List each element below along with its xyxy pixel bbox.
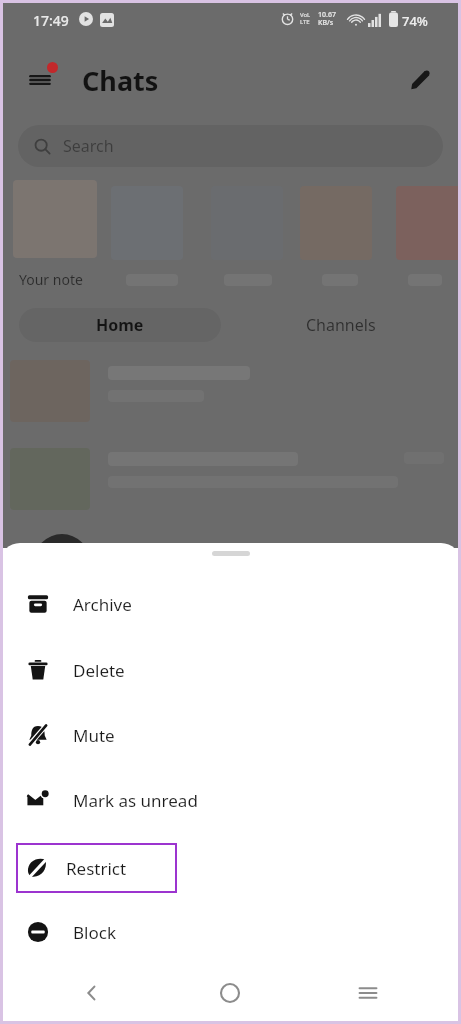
button[interactable]: Back — [72, 973, 112, 1013]
staticText: Search — [63, 135, 114, 157]
button[interactable]: Home — [19, 308, 221, 342]
staticText: Archive — [73, 593, 132, 616]
staticText: VoL LTE — [300, 11, 311, 26]
button[interactable]: Archive — [0, 578, 461, 630]
staticText: 10.67 KB/s — [318, 10, 336, 27]
staticText: Mark as unread — [73, 789, 198, 812]
button[interactable]: Block — [0, 906, 461, 958]
button[interactable]: Menu — [18, 58, 62, 102]
staticText: Block — [73, 921, 116, 944]
staticText: 74% — [402, 12, 428, 30]
button[interactable]: Search — [18, 125, 443, 167]
button[interactable]: Home — [210, 973, 250, 1013]
staticText: Restrict — [66, 857, 127, 880]
button[interactable]: Mute — [0, 709, 461, 761]
staticText: Channels — [306, 314, 376, 336]
button[interactable]: Channels — [240, 308, 442, 342]
staticText: Mute — [73, 724, 115, 747]
staticText: Home — [96, 314, 144, 336]
staticText: 17:49 — [33, 11, 69, 30]
button[interactable]: Recent apps — [348, 973, 388, 1013]
staticText: Chats — [82, 62, 159, 99]
staticText: Your note — [19, 270, 83, 289]
staticText: Delete — [73, 659, 125, 682]
button[interactable]: Delete — [0, 644, 461, 696]
button[interactable]: New chat — [399, 58, 441, 100]
button[interactable]: Mark as unread — [0, 774, 461, 826]
button[interactable]: Restrict — [18, 845, 175, 891]
